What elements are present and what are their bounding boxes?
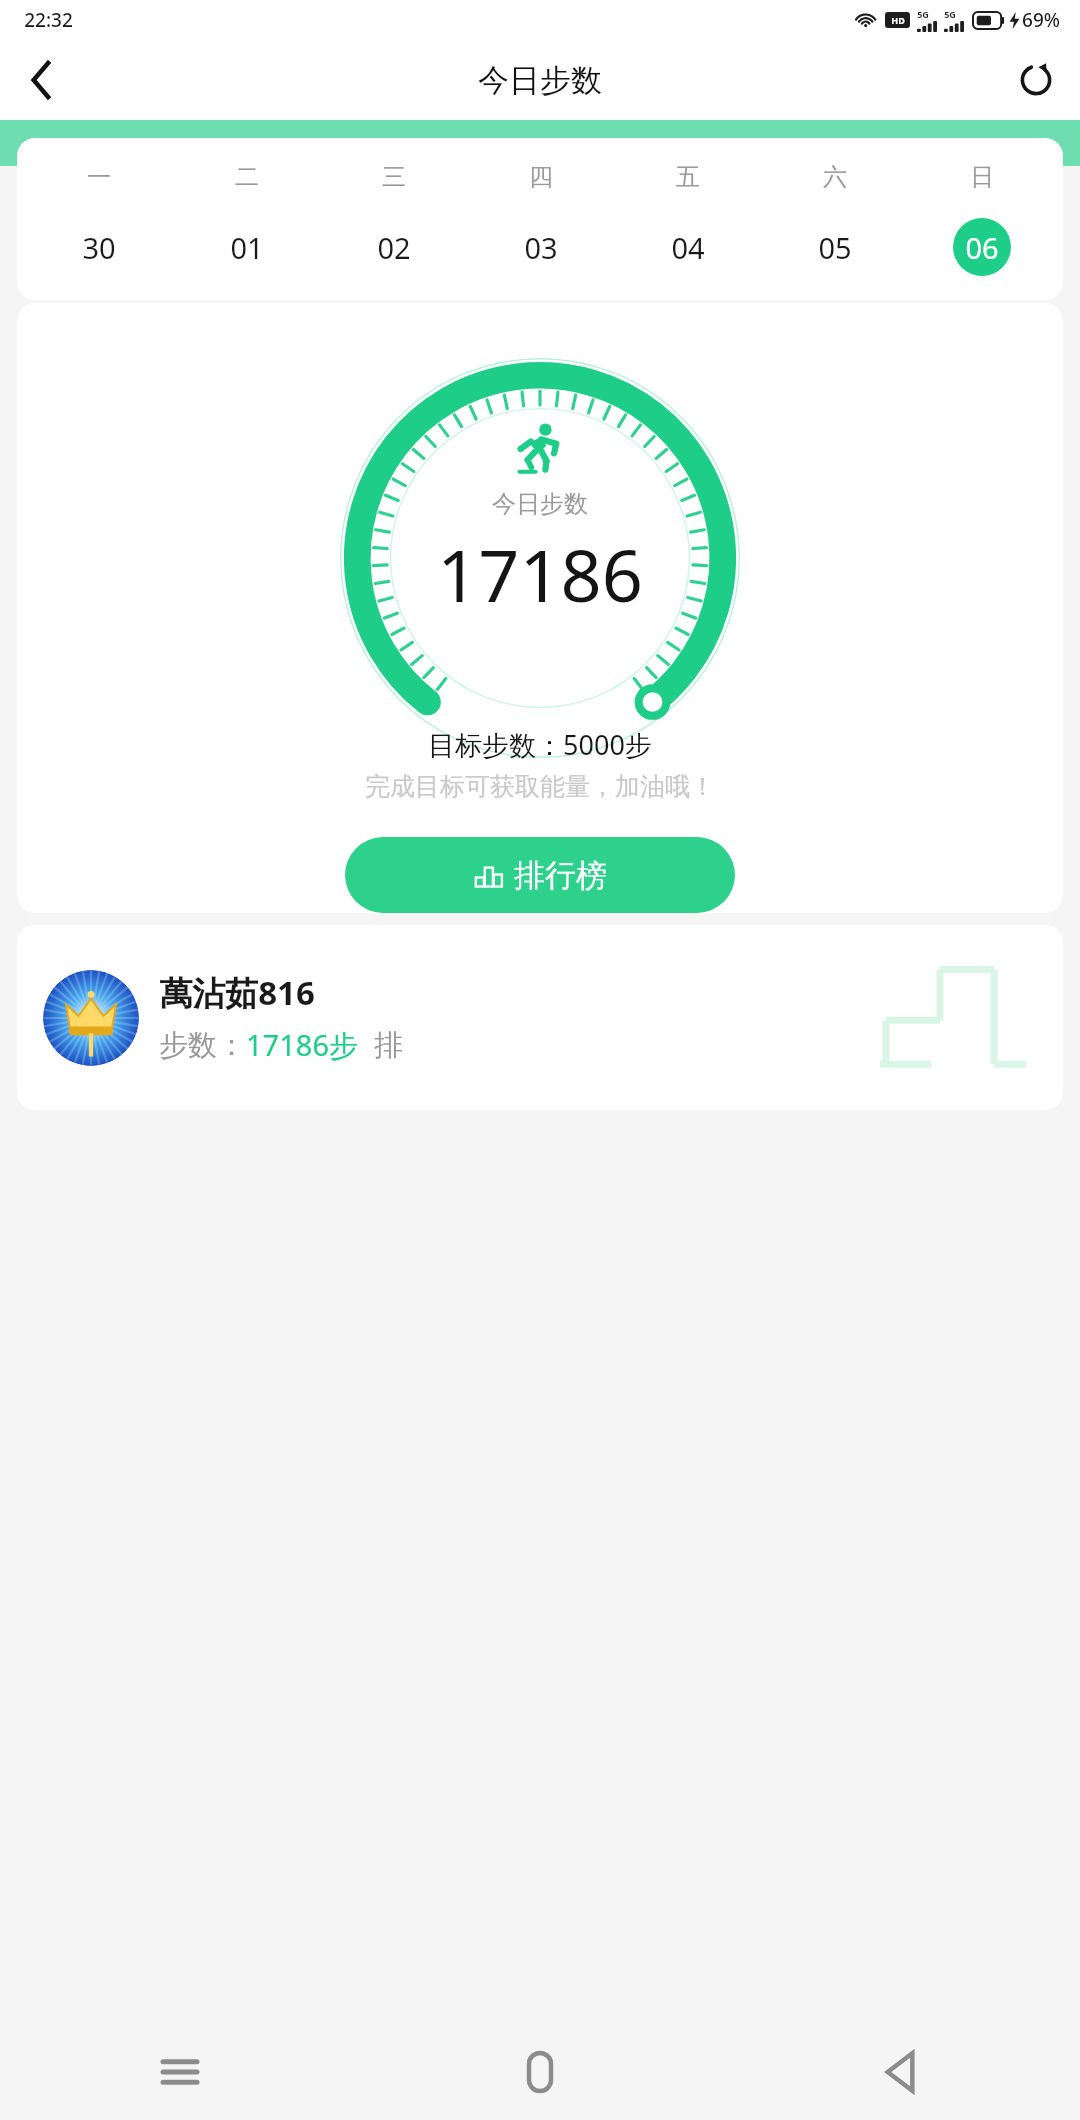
staticText: 05 bbox=[818, 228, 852, 267]
staticText: 排行榜 bbox=[514, 856, 607, 895]
staticText: 今日步数 bbox=[492, 489, 588, 519]
button[interactable]: 04 bbox=[614, 218, 761, 276]
button[interactable]: Recents bbox=[144, 2036, 216, 2108]
staticText: 萬沾茹816 bbox=[159, 970, 315, 1015]
button[interactable]: Back bbox=[14, 52, 70, 108]
button[interactable]: 02 bbox=[320, 218, 467, 276]
staticText: 17186步 bbox=[246, 1025, 358, 1065]
staticText: 五 bbox=[676, 162, 700, 192]
button[interactable]: 06 bbox=[908, 218, 1055, 276]
button[interactable]: Back bbox=[864, 2036, 936, 2108]
staticText: 步数： bbox=[159, 1027, 246, 1064]
staticText: 完成目标可获取能量，加油哦！ bbox=[365, 771, 715, 802]
staticText: 排 bbox=[374, 1027, 403, 1064]
staticText: 日 bbox=[970, 162, 994, 192]
staticText: HD bbox=[891, 14, 905, 26]
button[interactable]: 05 bbox=[761, 218, 908, 276]
button[interactable]: Refresh bbox=[1008, 52, 1064, 108]
staticText: 22:32 bbox=[24, 7, 73, 33]
staticText: 04 bbox=[671, 228, 705, 267]
staticText: 三 bbox=[382, 162, 406, 192]
button[interactable]: 一 bbox=[17, 138, 1063, 300]
staticText: 目标步数：5000步 bbox=[428, 726, 652, 763]
staticText: 六 bbox=[823, 162, 847, 192]
staticText: 03 bbox=[524, 228, 558, 267]
button[interactable]: 30 bbox=[25, 218, 173, 276]
staticText: 01 bbox=[230, 228, 264, 267]
staticText: 69% bbox=[1022, 7, 1060, 33]
button[interactable]: 排行榜 bbox=[345, 837, 735, 913]
button[interactable]: 01 bbox=[173, 218, 320, 276]
staticText: 四 bbox=[529, 162, 553, 192]
staticText: 5G bbox=[944, 8, 956, 20]
staticText: 06 bbox=[965, 228, 999, 267]
staticText: 17186 bbox=[437, 525, 643, 623]
button[interactable]: 萬沾茹816 bbox=[17, 925, 1063, 1110]
staticText: 30 bbox=[82, 228, 116, 267]
button[interactable]: 03 bbox=[467, 218, 614, 276]
staticText: 02 bbox=[377, 228, 411, 267]
button[interactable]: Home bbox=[504, 2036, 576, 2108]
staticText: 今日步数 bbox=[478, 61, 602, 100]
staticText: 二 bbox=[235, 162, 259, 192]
staticText: 一 bbox=[87, 162, 111, 192]
staticText: 5G bbox=[917, 8, 929, 20]
